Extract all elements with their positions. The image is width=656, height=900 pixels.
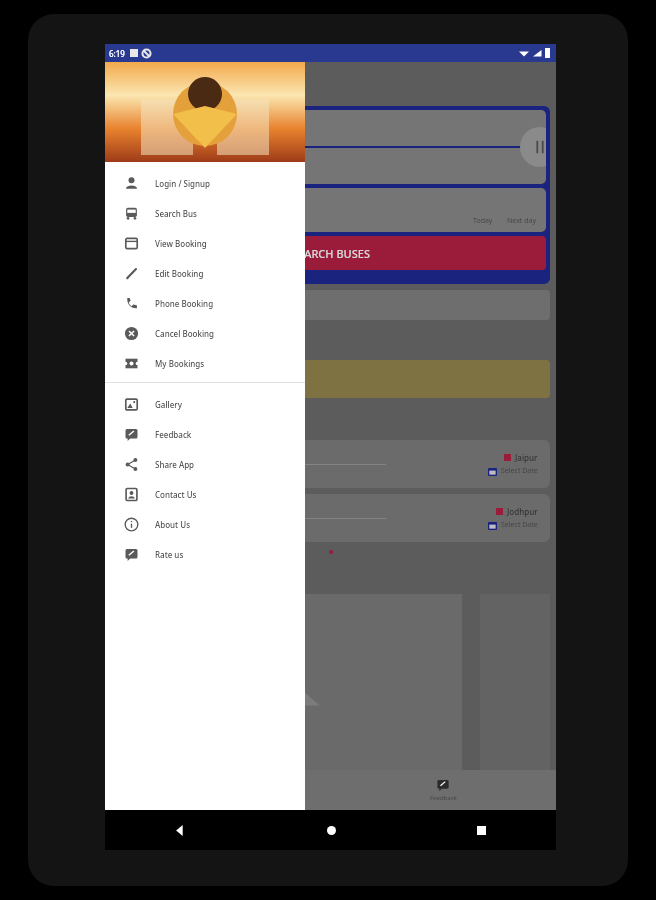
staticText: My Bookings [155,358,205,369]
button[interactable]: Gallery [105,389,305,419]
button[interactable]: Jaipur [111,440,550,488]
staticText: 6:19 [109,48,125,59]
staticText: Login / Signup [155,178,211,189]
staticText: Select Date [501,520,538,530]
button[interactable]: Back [105,810,256,850]
button[interactable]: Feedback [330,770,556,810]
button[interactable]: Contact Us [105,479,305,509]
button[interactable]: View Booking [105,228,305,258]
staticText: Search Bus [155,208,197,219]
button[interactable]: Edit Booking [105,258,305,288]
staticText: Phone Booking [155,298,214,309]
button[interactable]: Login / Signup [105,168,305,198]
button[interactable]: SEARCH BUSES [115,236,546,270]
button[interactable]: Recent apps [406,810,556,850]
staticText: Contact Us [155,489,197,500]
staticText: Next day [507,216,536,226]
staticText: Select Date [501,466,538,476]
button[interactable]: Feedback [105,419,305,449]
staticText: Jaipur [515,452,538,463]
staticText: Share App [155,459,195,470]
button[interactable]: About Us [105,509,305,539]
button[interactable]: Account [105,770,330,810]
staticText: Jodhpur [507,506,538,517]
staticText: About Us [155,519,191,530]
staticText: Popular routes [117,412,228,432]
staticText: SEARCH BUSES [292,246,370,261]
button[interactable]: Rate us [105,539,305,569]
button[interactable]: Jodhpur [111,494,550,542]
staticText: Rate us [155,549,184,560]
button[interactable]: Share App [105,449,305,479]
button[interactable]: COVID SAFE GUIDELINES [111,290,550,320]
button[interactable]: My Bookings [105,348,305,378]
staticText: Feedback [155,429,192,440]
staticText: View Booking [155,238,207,249]
staticText: Today [473,216,493,226]
button[interactable]: Search Bus [105,198,305,228]
button[interactable]: Swap source and destination [520,127,546,167]
staticText: Edit Booking [155,268,204,279]
staticText: COVID SAFE GUIDELINES [123,300,218,311]
button[interactable]: Cancel Booking [105,318,305,348]
staticText: Cancel Booking [155,328,215,339]
button[interactable]: Home [256,810,406,850]
button[interactable]: Phone Booking [105,288,305,318]
staticText: Ongoing offers [117,332,230,352]
staticText: Gallery [155,399,182,410]
staticText: Feedback [430,794,457,802]
